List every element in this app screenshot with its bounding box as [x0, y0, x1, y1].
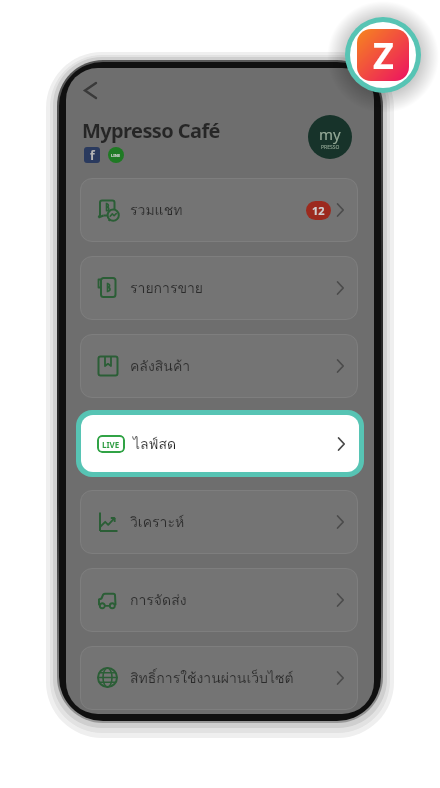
- staticText: f: [90, 147, 95, 163]
- button[interactable]: การจัดส่ง: [80, 568, 358, 632]
- staticText: สิทธิ์การใช้งานผ่านเว็บไซต์: [130, 667, 294, 689]
- staticText: คลังสินค้า: [130, 355, 191, 377]
- staticText: LIVE: [102, 439, 120, 450]
- button[interactable]: คลังสินค้า: [80, 334, 358, 398]
- staticText: Mypresso Café: [82, 117, 220, 144]
- button[interactable]: [78, 78, 102, 102]
- staticText: วิเคราะห์: [130, 511, 185, 533]
- staticText: LINE: [111, 153, 121, 158]
- button[interactable]: รายการขาย: [80, 256, 358, 320]
- button[interactable]: LINE: [108, 147, 124, 163]
- button[interactable]: วิเคราะห์: [80, 490, 358, 554]
- button[interactable]: สิทธิ์การใช้งานผ่านเว็บไซต์: [80, 646, 358, 710]
- button[interactable]: f: [84, 147, 100, 163]
- staticText: Z: [373, 31, 394, 80]
- staticText: PRESSO: [321, 144, 340, 151]
- staticText: รายการขาย: [130, 277, 204, 299]
- staticText: 12: [312, 203, 325, 218]
- staticText: my: [319, 124, 341, 144]
- staticText: รวมแชท: [130, 199, 183, 221]
- staticText: การจัดส่ง: [130, 589, 187, 611]
- button[interactable]: รวมแชท: [80, 178, 358, 242]
- staticText: ไลฟ์สด: [133, 433, 177, 455]
- button[interactable]: LIVE: [76, 410, 364, 477]
- button[interactable]: Z: [345, 17, 421, 93]
